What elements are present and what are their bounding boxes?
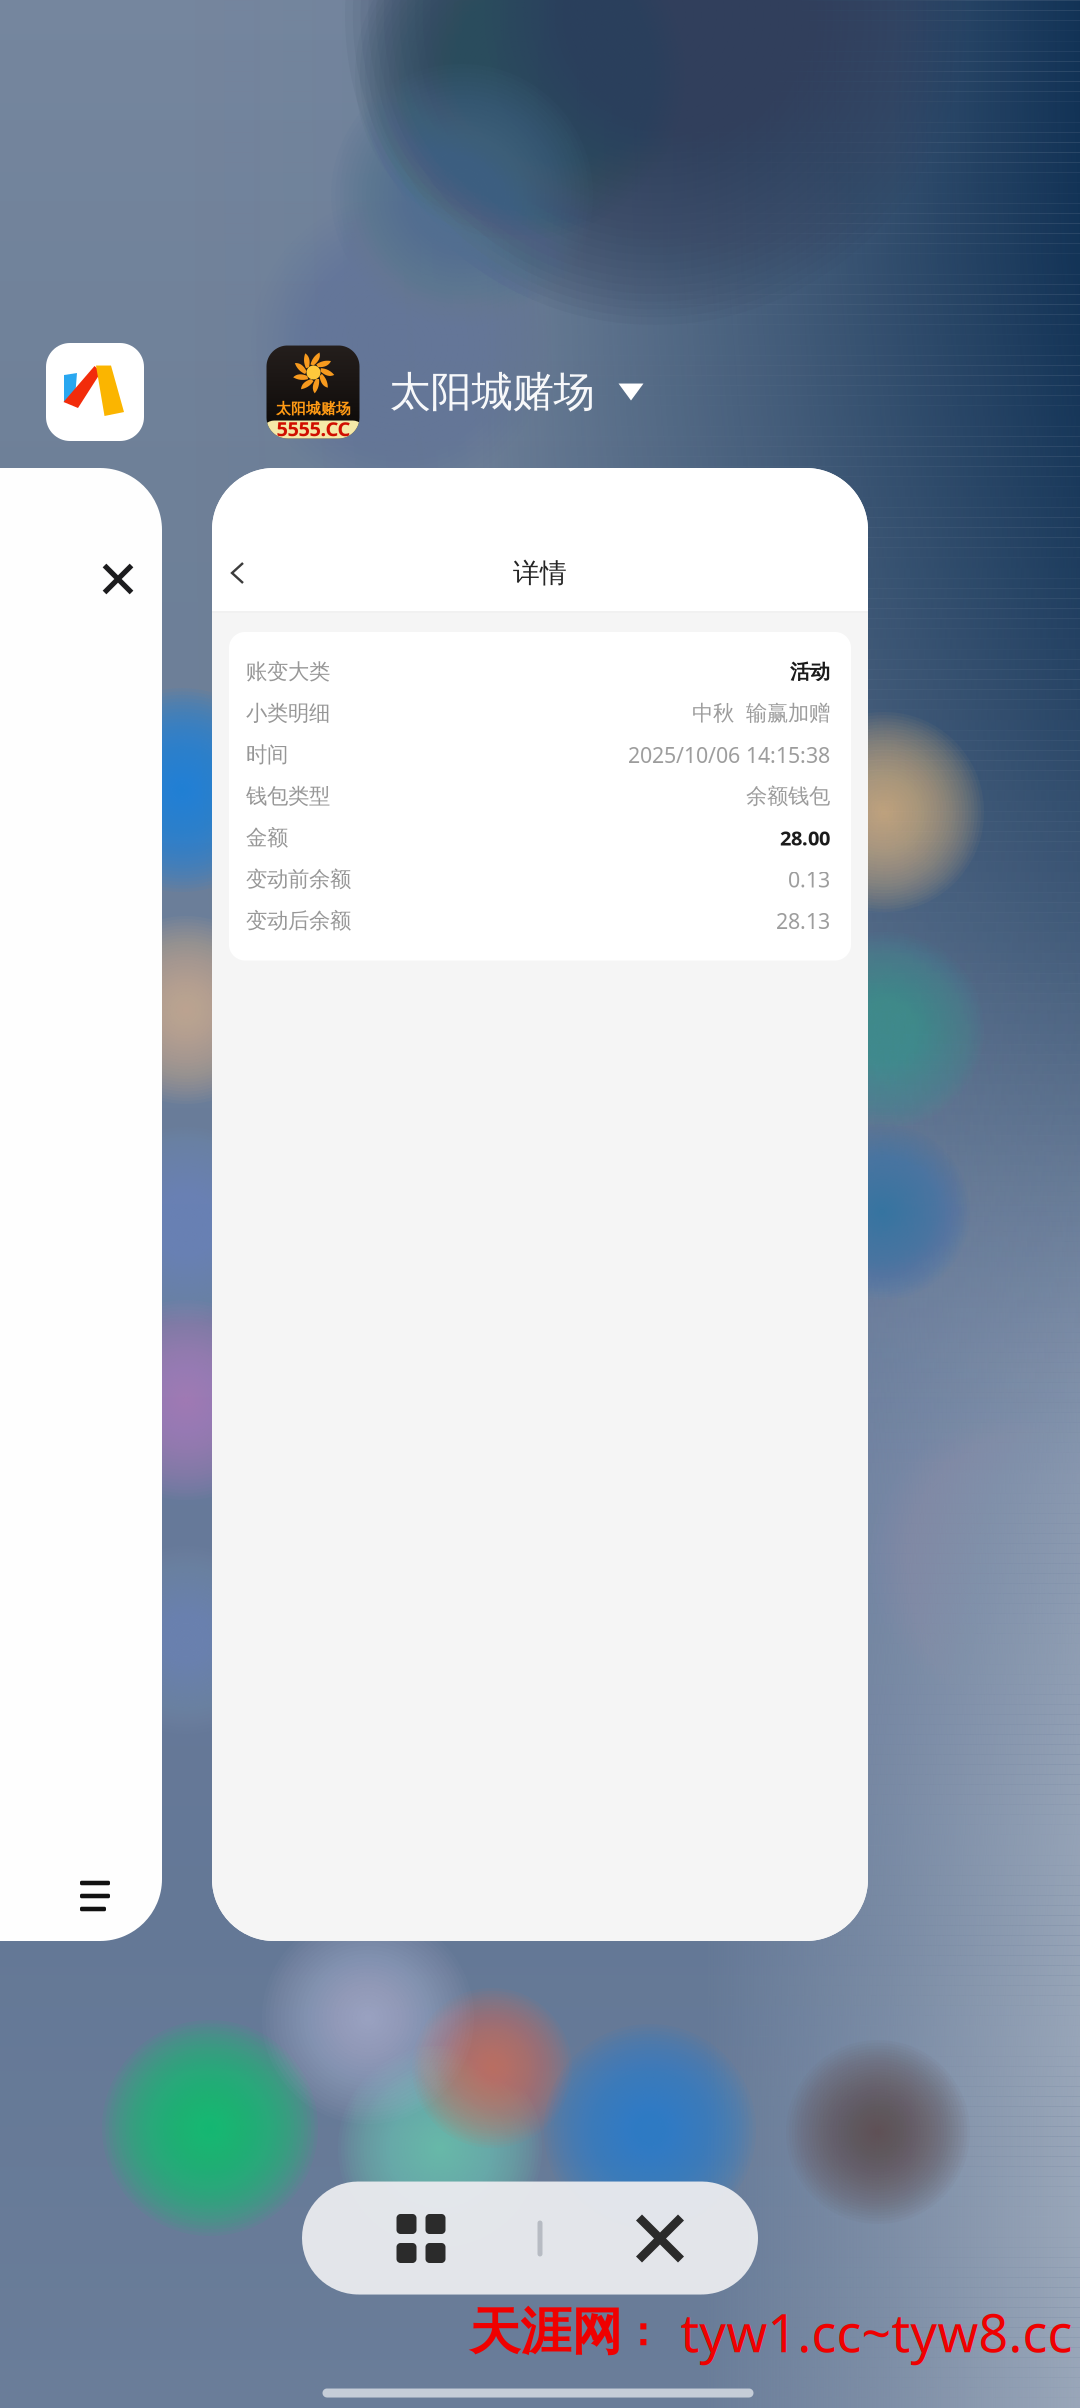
- staticText: 账变大类: [246, 659, 330, 685]
- staticText: 变动前余额: [246, 866, 351, 892]
- staticText: 0.13: [788, 865, 830, 893]
- staticText: 金额: [246, 825, 288, 851]
- staticText: tyw1.cc~tyw8.cc: [680, 2297, 1072, 2367]
- button[interactable]: All apps: [397, 2214, 445, 2262]
- staticText: 钱包类型: [246, 783, 330, 809]
- button[interactable]: Close all: [639, 2217, 681, 2259]
- button[interactable]: Back: [220, 555, 256, 591]
- staticText: 中秋 输赢加赠: [692, 700, 830, 726]
- button[interactable]: 太阳城赌场 — switch app: [266, 345, 643, 438]
- staticText: 太阳城赌场: [389, 367, 594, 417]
- staticText: 时间: [246, 742, 288, 768]
- staticText: 小类明细: [246, 700, 330, 726]
- staticText: 天涯网: [469, 2301, 622, 2363]
- staticText: 28.13: [776, 907, 830, 935]
- staticText: 太阳城赌场: [276, 399, 351, 417]
- button[interactable]: Previous app: [0, 468, 162, 1941]
- staticText: 5555.CC: [276, 415, 350, 442]
- staticText: 28.00: [780, 824, 830, 851]
- staticText: 详情: [513, 557, 567, 589]
- staticText: 活动: [790, 659, 830, 684]
- staticText: 变动后余额: [246, 908, 351, 934]
- staticText: 余额钱包: [746, 783, 830, 809]
- button[interactable]: Previous app icon: [46, 343, 144, 441]
- staticText: ：: [622, 2307, 662, 2356]
- staticText: 2025/10/06 14:15:38: [628, 741, 830, 769]
